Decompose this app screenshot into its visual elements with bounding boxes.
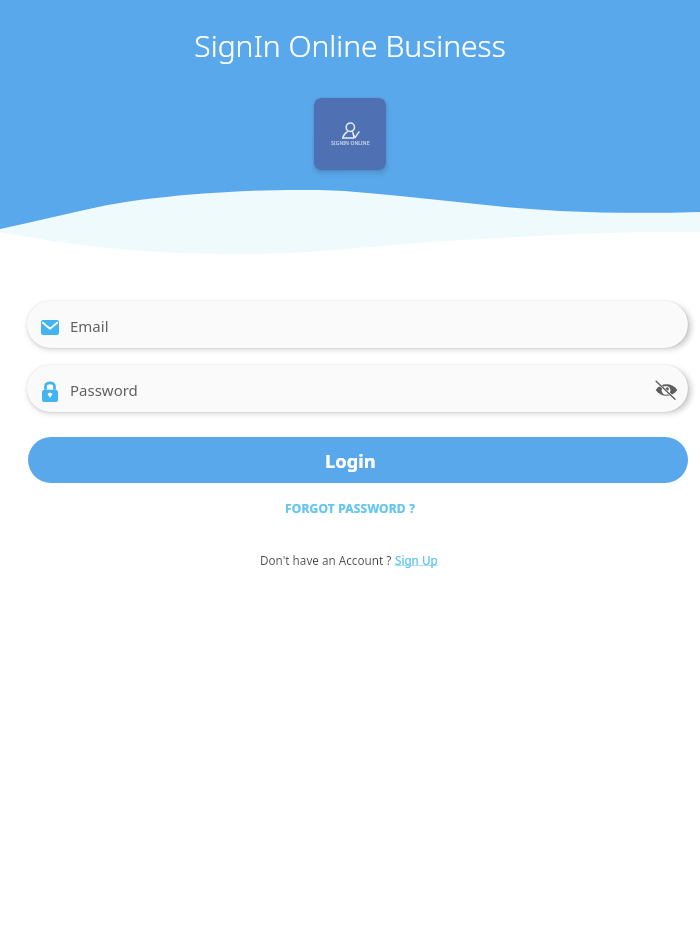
staticText: Sign Up: [395, 552, 441, 568]
button[interactable]: Don't have an Account ?: [260, 552, 441, 568]
button[interactable]: Login: [28, 437, 688, 483]
staticText: SignIn Online Business: [0, 25, 700, 66]
staticText: Login: [325, 448, 376, 473]
button[interactable]: Toggle password visibility: [651, 375, 681, 405]
staticText: FORGOT PASSWORD ?: [285, 500, 416, 516]
button[interactable]: FORGOT PASSWORD ?: [277, 495, 424, 521]
staticText: Don't have an Account ?: [260, 552, 395, 568]
staticText: Password: [70, 380, 138, 400]
staticText: SIGNIN ONLINE: [331, 140, 370, 147]
staticText: Email: [70, 316, 109, 336]
button[interactable]: Email: [27, 301, 688, 348]
button[interactable]: Password: [27, 365, 688, 412]
